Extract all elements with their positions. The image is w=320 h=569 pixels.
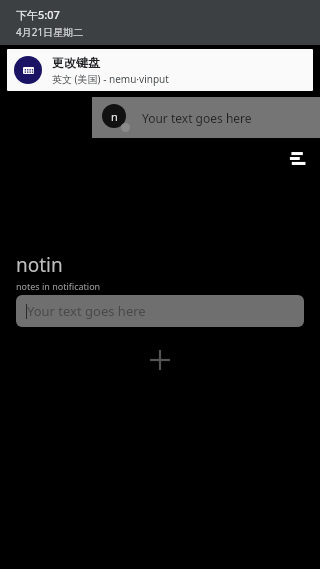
button[interactable]: Add note	[138, 338, 182, 382]
staticText: Your text goes here	[27, 302, 146, 320]
button[interactable]: Your text goes here	[16, 295, 304, 327]
staticText: notin	[16, 252, 63, 278]
button[interactable]: 更改键盘	[7, 49, 313, 91]
staticText: Your text goes here	[142, 110, 252, 126]
button[interactable]: Sort notes	[282, 143, 312, 173]
staticText: 英文 (美国) - nemu·vinput	[52, 72, 169, 86]
staticText: notes in notification	[16, 280, 101, 292]
button[interactable]: n	[92, 97, 320, 138]
staticText: n	[111, 109, 118, 124]
staticText: 更改键盘	[52, 55, 100, 70]
staticText: 4月21日星期二	[16, 25, 84, 39]
staticText: 下午5:07	[16, 7, 60, 22]
